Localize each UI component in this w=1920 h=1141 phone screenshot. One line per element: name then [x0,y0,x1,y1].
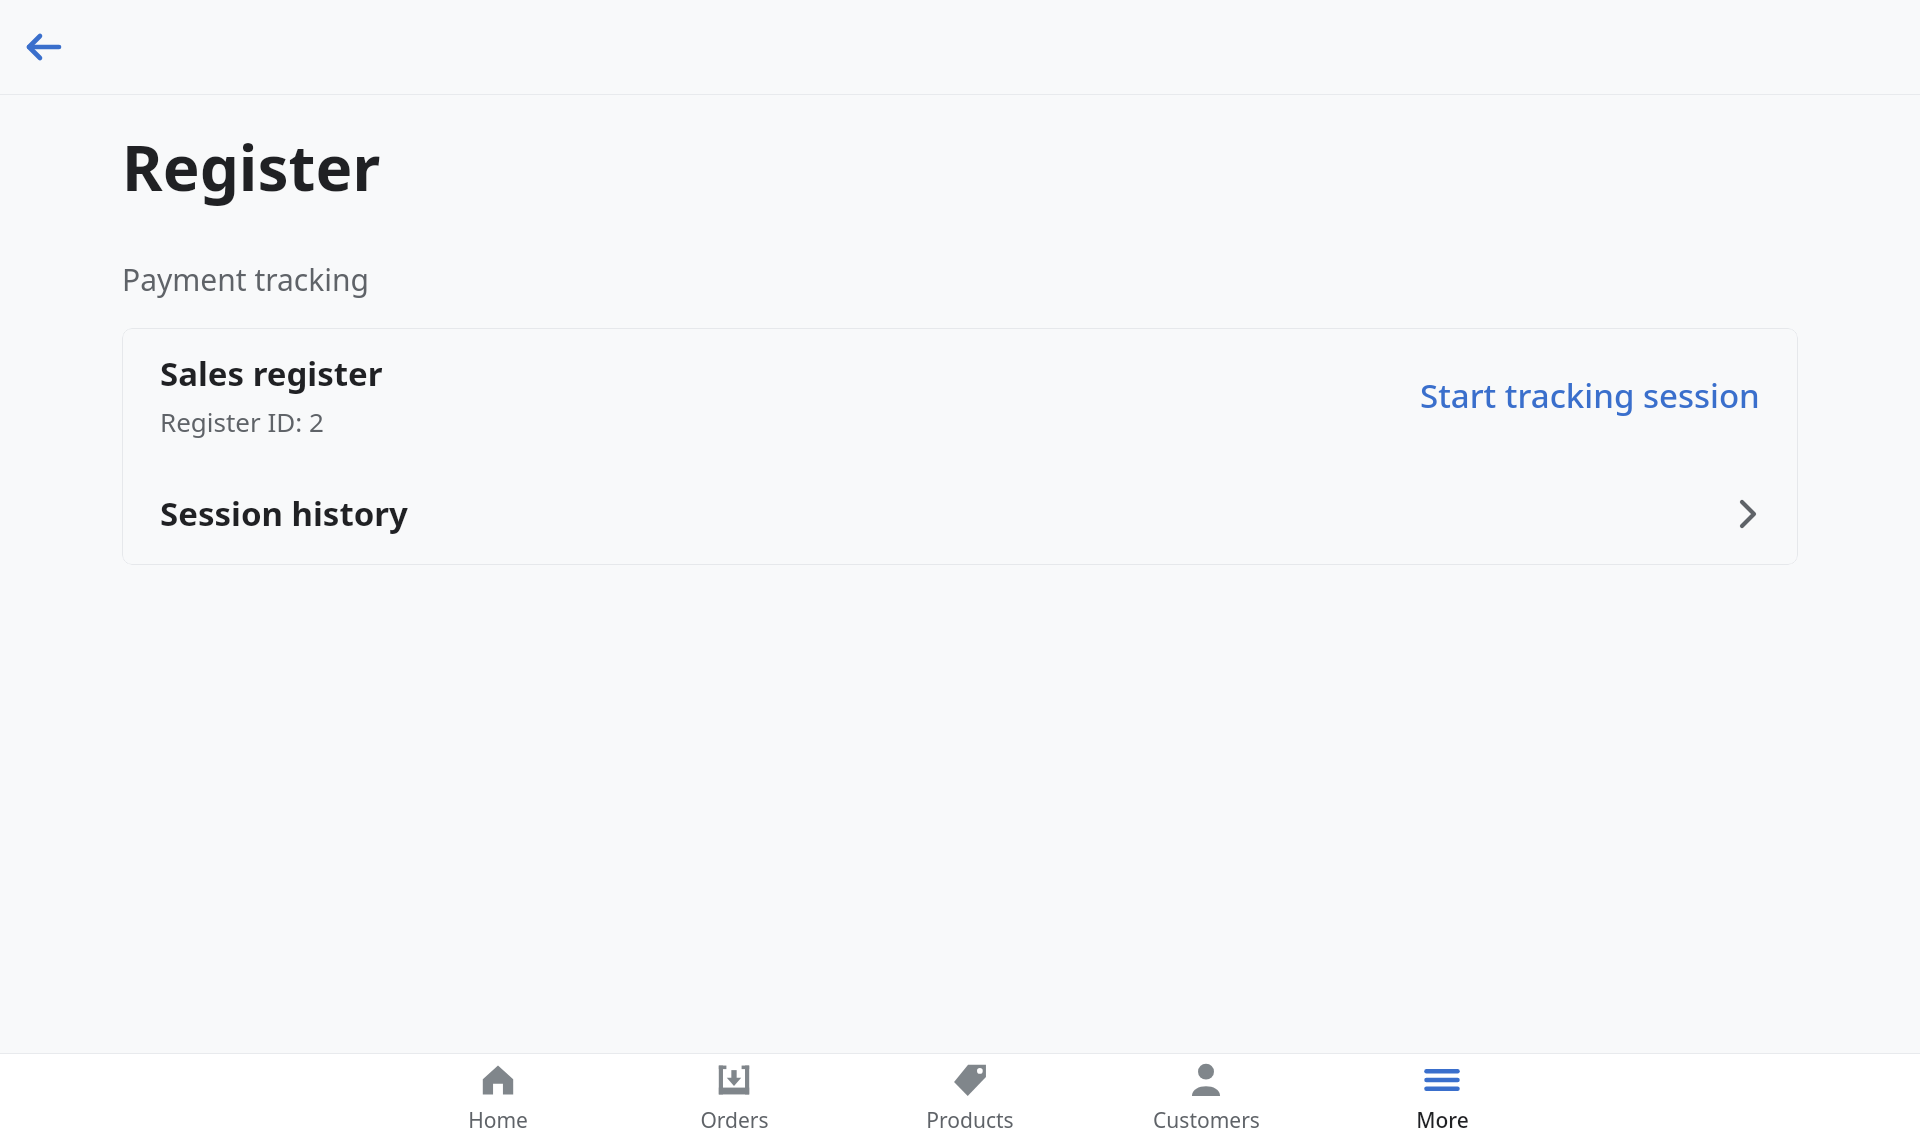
staticText: Customers [1153,1106,1260,1135]
staticText: Payment tracking [122,259,370,300]
staticText: Session history [160,491,1728,536]
staticText: Orders [700,1106,769,1135]
button[interactable]: More [1324,1054,1560,1141]
staticText: Start tracking session [1420,373,1760,418]
button[interactable]: Session history [122,462,1798,565]
staticText: Home [468,1106,528,1135]
button[interactable]: Back [14,17,74,77]
button[interactable]: Start tracking session [1406,373,1760,418]
staticText: Register [122,125,381,209]
button[interactable]: Products [852,1054,1088,1141]
staticText: Products [926,1106,1014,1135]
staticText: Sales register [160,351,383,396]
button[interactable]: Orders [616,1054,852,1141]
staticText: More [1416,1106,1469,1135]
button[interactable]: Sales register [122,328,1798,462]
button[interactable]: Home [380,1054,616,1141]
staticText: Register ID: 2 [160,404,324,439]
button[interactable]: Customers [1088,1054,1324,1141]
